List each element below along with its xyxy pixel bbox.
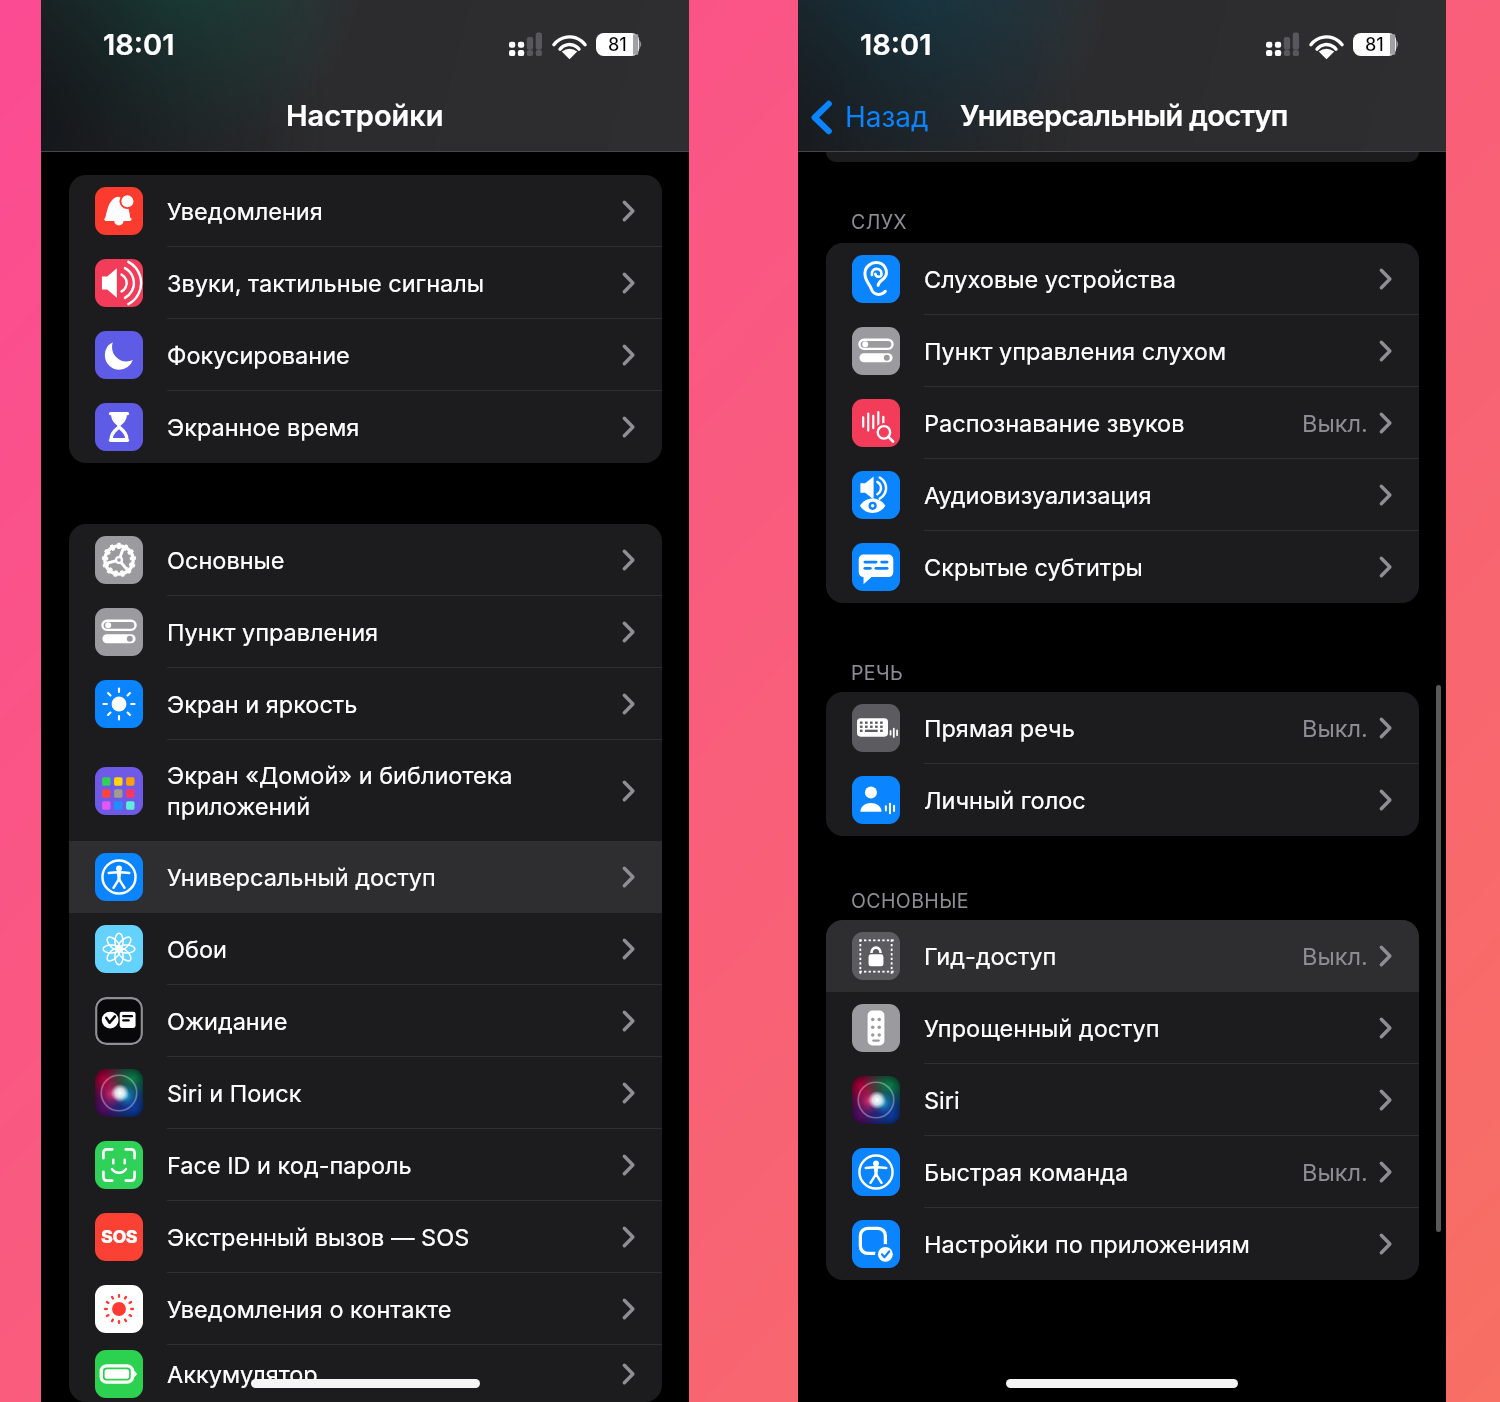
button[interactable]: Быстрая команда bbox=[826, 1136, 1419, 1208]
button[interactable]: Ожидание bbox=[69, 985, 662, 1057]
button[interactable]: Уведомления bbox=[69, 175, 662, 247]
staticText: Настройки bbox=[286, 98, 444, 133]
staticText: Основные bbox=[167, 546, 623, 574]
staticText: Пункт управления слухом bbox=[924, 337, 1380, 365]
button[interactable]: Звуки, тактильные сигналы bbox=[69, 247, 662, 319]
staticText: Фокусирование bbox=[167, 341, 623, 369]
staticText: Обои bbox=[167, 935, 623, 963]
button[interactable]: Пункт управления bbox=[69, 596, 662, 668]
staticText: 81 bbox=[608, 34, 627, 56]
button[interactable]: Фокусирование bbox=[69, 319, 662, 391]
staticText: СЛУХ bbox=[851, 210, 907, 234]
staticText: Siri bbox=[924, 1086, 1380, 1114]
staticText: Назад bbox=[845, 100, 929, 134]
staticText: Настройки по приложениям bbox=[924, 1230, 1380, 1258]
staticText: Быстрая команда bbox=[924, 1158, 1302, 1186]
button[interactable]: Универсальный доступ bbox=[69, 841, 662, 913]
staticText: Аккумулятор bbox=[167, 1360, 623, 1388]
button[interactable]: Пункт управления слухом bbox=[826, 315, 1419, 387]
staticText: Ожидание bbox=[167, 1007, 623, 1035]
button[interactable]: Упрощенный доступ bbox=[826, 992, 1419, 1064]
staticText: Гид-доступ bbox=[924, 942, 1302, 970]
button[interactable]: Обои bbox=[69, 913, 662, 985]
button[interactable]: Основные bbox=[69, 524, 662, 596]
button[interactable]: SOS bbox=[69, 1201, 662, 1273]
staticText: Звуки, тактильные сигналы bbox=[167, 269, 623, 297]
staticText: Экран «Домой» и библиотека приложений bbox=[167, 761, 623, 820]
button[interactable]: Настройки по приложениям bbox=[826, 1208, 1419, 1280]
staticText: Экранное время bbox=[167, 413, 623, 441]
staticText: Распознавание звуков bbox=[924, 409, 1302, 437]
button[interactable]: Siri bbox=[826, 1064, 1419, 1136]
staticText: Прямая речь bbox=[924, 714, 1302, 742]
staticText: ОСНОВНЫЕ bbox=[851, 889, 969, 913]
staticText: РЕЧЬ bbox=[851, 661, 904, 685]
button[interactable]: Экран и яркость bbox=[69, 668, 662, 740]
staticText: Выкл. bbox=[1302, 714, 1368, 742]
staticText: Siri и Поиск bbox=[167, 1079, 623, 1107]
staticText: Уведомления bbox=[167, 197, 623, 225]
staticText: Выкл. bbox=[1302, 1158, 1368, 1186]
button[interactable]: Аккумулятор bbox=[69, 1345, 662, 1402]
button[interactable]: Назад bbox=[808, 98, 935, 140]
staticText: Скрытые субтитры bbox=[924, 553, 1380, 581]
staticText: 18:01 bbox=[103, 27, 175, 62]
button[interactable]: Личный голос bbox=[826, 764, 1419, 836]
staticText: Универсальный доступ bbox=[960, 98, 1288, 133]
button[interactable]: Прямая речь bbox=[826, 692, 1419, 764]
staticText: Face ID и код-пароль bbox=[167, 1151, 623, 1179]
staticText: Личный голос bbox=[924, 786, 1380, 814]
staticText: Универсальный доступ bbox=[167, 863, 623, 891]
staticText: SOS bbox=[101, 1226, 138, 1248]
staticText: Экстренный вызов — SOS bbox=[167, 1223, 623, 1251]
button[interactable]: Распознавание звуков bbox=[826, 387, 1419, 459]
button[interactable]: Аудиовизуализация bbox=[826, 459, 1419, 531]
staticText: Уведомления о контакте bbox=[167, 1295, 623, 1323]
staticText: Выкл. bbox=[1302, 409, 1368, 437]
staticText: Пункт управления bbox=[167, 618, 623, 646]
button[interactable]: Siri и Поиск bbox=[69, 1057, 662, 1129]
button[interactable]: Экранное время bbox=[69, 391, 662, 463]
button[interactable]: Слуховые устройства bbox=[826, 243, 1419, 315]
button[interactable]: Гид-доступ bbox=[826, 920, 1419, 992]
button[interactable]: Скрытые субтитры bbox=[826, 531, 1419, 603]
staticText: Экран и яркость bbox=[167, 690, 623, 718]
button[interactable]: Экран «Домой» и библиотека приложений bbox=[69, 740, 662, 841]
staticText: Упрощенный доступ bbox=[924, 1014, 1380, 1042]
staticText: Слуховые устройства bbox=[924, 265, 1380, 293]
staticText: 18:01 bbox=[860, 27, 932, 62]
staticText: Аудиовизуализация bbox=[924, 481, 1380, 509]
button[interactable]: Уведомления о контакте bbox=[69, 1273, 662, 1345]
staticText: Выкл. bbox=[1302, 942, 1368, 970]
button[interactable]: Face ID и код-пароль bbox=[69, 1129, 662, 1201]
staticText: 81 bbox=[1365, 34, 1384, 56]
